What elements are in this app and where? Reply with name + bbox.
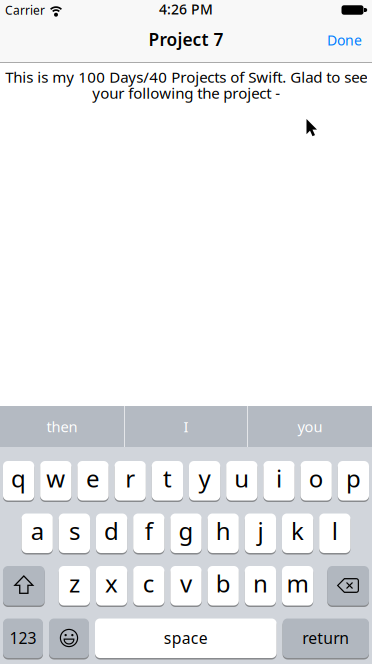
button[interactable]: n — [245, 566, 276, 607]
button[interactable]: return — [283, 618, 369, 659]
button[interactable]: 123 — [3, 618, 43, 659]
button[interactable]: you — [248, 406, 372, 447]
staticText: w — [46, 462, 65, 495]
staticText: then — [46, 416, 77, 436]
button[interactable]: m — [282, 566, 313, 607]
button[interactable]: g — [170, 513, 202, 554]
button[interactable]: c — [133, 566, 164, 607]
button[interactable]: q — [3, 461, 34, 502]
button[interactable]: l — [319, 513, 350, 554]
button[interactable]: i — [263, 461, 295, 502]
staticText: q — [11, 462, 26, 495]
staticText: x — [105, 567, 118, 600]
button[interactable]: t — [152, 461, 183, 502]
staticText: v — [180, 567, 192, 600]
button[interactable]: e — [77, 461, 109, 502]
staticText: m — [287, 567, 309, 600]
button[interactable]: u — [226, 461, 257, 502]
staticText: n — [253, 567, 268, 600]
button[interactable]: then — [0, 406, 124, 447]
button[interactable]: Done — [327, 31, 362, 51]
staticText: you — [297, 416, 322, 436]
button[interactable]: h — [208, 513, 239, 554]
button[interactable]: d — [96, 513, 127, 554]
staticText: h — [216, 514, 231, 547]
staticText: e — [86, 462, 100, 495]
staticText: j — [257, 514, 263, 547]
button[interactable]: k — [282, 513, 313, 554]
staticText: g — [178, 514, 193, 547]
button[interactable]: w — [40, 461, 71, 502]
staticText: 4:26 PM — [159, 0, 213, 19]
button[interactable]: r — [115, 461, 146, 502]
button[interactable]: I — [125, 406, 247, 447]
staticText: Carrier — [5, 2, 45, 18]
button[interactable]: a — [22, 513, 53, 554]
staticText: k — [291, 514, 304, 547]
staticText: l — [332, 514, 338, 547]
staticText: u — [234, 462, 249, 495]
button[interactable]: Emoji — [49, 618, 89, 659]
button[interactable]: s — [59, 513, 90, 554]
staticText: 123 — [9, 627, 36, 649]
staticText: I — [183, 416, 188, 436]
staticText: Done — [327, 30, 362, 50]
staticText: i — [276, 462, 282, 495]
staticText: r — [125, 462, 135, 495]
button[interactable]: z — [59, 566, 90, 607]
staticText: Project 7 — [148, 27, 223, 51]
staticText: space — [164, 627, 208, 649]
button[interactable]: y — [189, 461, 220, 502]
staticText: a — [31, 514, 44, 547]
button[interactable]: b — [208, 566, 239, 607]
button[interactable]: v — [170, 566, 202, 607]
button[interactable]: f — [133, 513, 164, 554]
staticText: p — [346, 462, 361, 495]
staticText: This is my 100 Days/40 Projects of Swift… — [5, 69, 367, 101]
staticText: y — [199, 462, 211, 495]
button[interactable]: space — [95, 618, 277, 659]
staticText: return — [302, 627, 349, 649]
staticText: s — [69, 514, 80, 547]
staticText: t — [163, 462, 172, 495]
button[interactable]: x — [96, 566, 127, 607]
button[interactable]: Shift — [3, 566, 45, 607]
button[interactable]: p — [338, 461, 369, 502]
button[interactable]: Delete — [327, 566, 369, 607]
staticText: o — [309, 462, 324, 495]
staticText: f — [145, 514, 153, 547]
staticText: d — [104, 514, 119, 547]
button[interactable]: o — [301, 461, 332, 502]
staticText: z — [69, 567, 80, 600]
staticText: c — [143, 567, 155, 600]
staticText: b — [216, 567, 231, 600]
button[interactable]: j — [245, 513, 276, 554]
